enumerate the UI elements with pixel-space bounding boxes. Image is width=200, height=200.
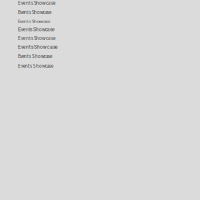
staticText: Events Showcase	[18, 63, 53, 69]
staticText: Events Showcase	[18, 18, 50, 24]
staticText: Events Showcase	[18, 27, 55, 32]
staticText: Events Showcase	[18, 0, 56, 6]
staticText: Events Showcase	[18, 53, 52, 60]
staticText: Events Showcase	[18, 44, 58, 50]
staticText: Events Showcase	[18, 9, 51, 15]
staticText: Events Showcase	[18, 35, 56, 41]
